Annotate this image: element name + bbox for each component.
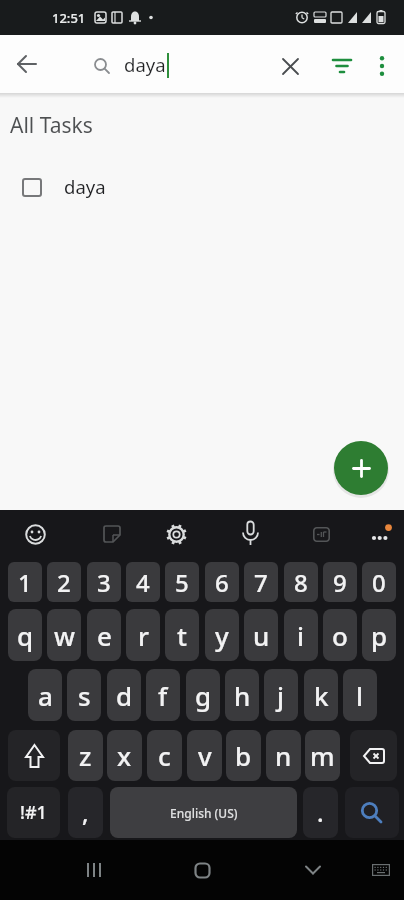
- button[interactable]: k: [304, 669, 338, 721]
- staticText: h: [234, 678, 251, 713]
- button[interactable]: o: [323, 609, 357, 661]
- button[interactable]: h: [225, 669, 259, 721]
- staticText: 0: [372, 566, 386, 599]
- staticText: a: [38, 678, 53, 713]
- staticText: d: [116, 678, 133, 713]
- button[interactable]: .: [303, 787, 338, 838]
- staticText: k: [314, 678, 329, 713]
- staticText: e: [97, 618, 112, 653]
- button[interactable]: x: [107, 730, 142, 781]
- button[interactable]: j: [264, 669, 298, 721]
- button[interactable]: t: [165, 609, 199, 661]
- staticText: c: [158, 738, 171, 773]
- button[interactable]: [16, 515, 54, 553]
- button[interactable]: u: [244, 609, 278, 661]
- staticText: u: [253, 618, 270, 653]
- button[interactable]: [231, 514, 269, 552]
- button[interactable]: f: [146, 669, 180, 721]
- staticText: n: [275, 738, 292, 773]
- staticText: l: [356, 678, 364, 713]
- button[interactable]: English (US): [110, 787, 297, 838]
- staticText: 8: [294, 566, 308, 599]
- button[interactable]: [272, 48, 308, 84]
- staticText: j: [277, 678, 285, 713]
- staticText: 7: [254, 566, 268, 599]
- button[interactable]: daya: [0, 170, 404, 204]
- button[interactable]: [302, 515, 340, 553]
- staticText: q: [17, 618, 34, 653]
- staticText: g: [195, 678, 212, 713]
- button[interactable]: e: [87, 609, 121, 661]
- button[interactable]: [9, 46, 45, 82]
- button[interactable]: !#1: [7, 787, 60, 838]
- button[interactable]: [72, 848, 116, 892]
- button[interactable]: 3: [87, 562, 121, 602]
- staticText: daya: [124, 52, 166, 77]
- staticText: 1: [18, 566, 32, 599]
- button[interactable]: [364, 48, 400, 84]
- staticText: p: [371, 618, 388, 653]
- button[interactable]: [8, 730, 60, 781]
- staticText: v: [198, 738, 212, 773]
- staticText: y: [215, 618, 229, 653]
- button[interactable]: 0: [362, 562, 396, 602]
- button[interactable]: ,: [68, 787, 103, 838]
- button[interactable]: z: [68, 730, 103, 781]
- button[interactable]: [361, 515, 399, 553]
- button[interactable]: i: [284, 609, 318, 661]
- button[interactable]: a: [28, 669, 62, 721]
- staticText: 9: [333, 566, 347, 599]
- staticText: .: [317, 796, 324, 829]
- button[interactable]: w: [47, 609, 81, 661]
- button[interactable]: y: [205, 609, 239, 661]
- staticText: !#1: [20, 800, 47, 825]
- button[interactable]: 7: [244, 562, 278, 602]
- button[interactable]: [180, 848, 224, 892]
- button[interactable]: n: [266, 730, 301, 781]
- staticText: 5: [175, 566, 189, 599]
- button[interactable]: l: [343, 669, 377, 721]
- button[interactable]: g: [186, 669, 220, 721]
- button[interactable]: [93, 515, 131, 553]
- button[interactable]: b: [226, 730, 261, 781]
- staticText: m: [310, 738, 335, 773]
- staticText: All Tasks: [10, 111, 93, 140]
- button[interactable]: 2: [47, 562, 81, 602]
- button[interactable]: 9: [323, 562, 357, 602]
- button[interactable]: d: [107, 669, 141, 721]
- button[interactable]: [157, 515, 195, 553]
- staticText: x: [117, 738, 132, 773]
- staticText: 12:51: [52, 9, 86, 27]
- staticText: 6: [215, 566, 229, 599]
- staticText: z: [79, 738, 92, 773]
- staticText: English (US): [170, 805, 238, 821]
- staticText: t: [177, 618, 187, 653]
- button[interactable]: [324, 48, 360, 84]
- button[interactable]: [345, 787, 399, 838]
- staticText: 4: [136, 566, 150, 599]
- staticText: b: [235, 738, 252, 773]
- staticText: daya: [64, 174, 106, 199]
- staticText: o: [332, 618, 348, 653]
- staticText: 2: [57, 566, 71, 599]
- button[interactable]: 1: [8, 562, 42, 602]
- button[interactable]: r: [126, 609, 160, 661]
- button[interactable]: [366, 855, 396, 885]
- staticText: ,: [82, 796, 89, 829]
- button[interactable]: s: [67, 669, 101, 721]
- button[interactable]: c: [147, 730, 182, 781]
- button[interactable]: q: [8, 609, 42, 661]
- button[interactable]: m: [305, 730, 340, 781]
- button[interactable]: [291, 848, 335, 892]
- button[interactable]: p: [362, 609, 396, 661]
- button[interactable]: [334, 441, 388, 495]
- button[interactable]: 4: [126, 562, 160, 602]
- staticText: s: [78, 678, 91, 713]
- staticText: f: [158, 678, 168, 713]
- staticText: w: [54, 618, 75, 653]
- button[interactable]: v: [187, 730, 222, 781]
- button[interactable]: 8: [284, 562, 318, 602]
- button[interactable]: 6: [205, 562, 239, 602]
- button[interactable]: 5: [165, 562, 199, 602]
- button[interactable]: [350, 730, 397, 781]
